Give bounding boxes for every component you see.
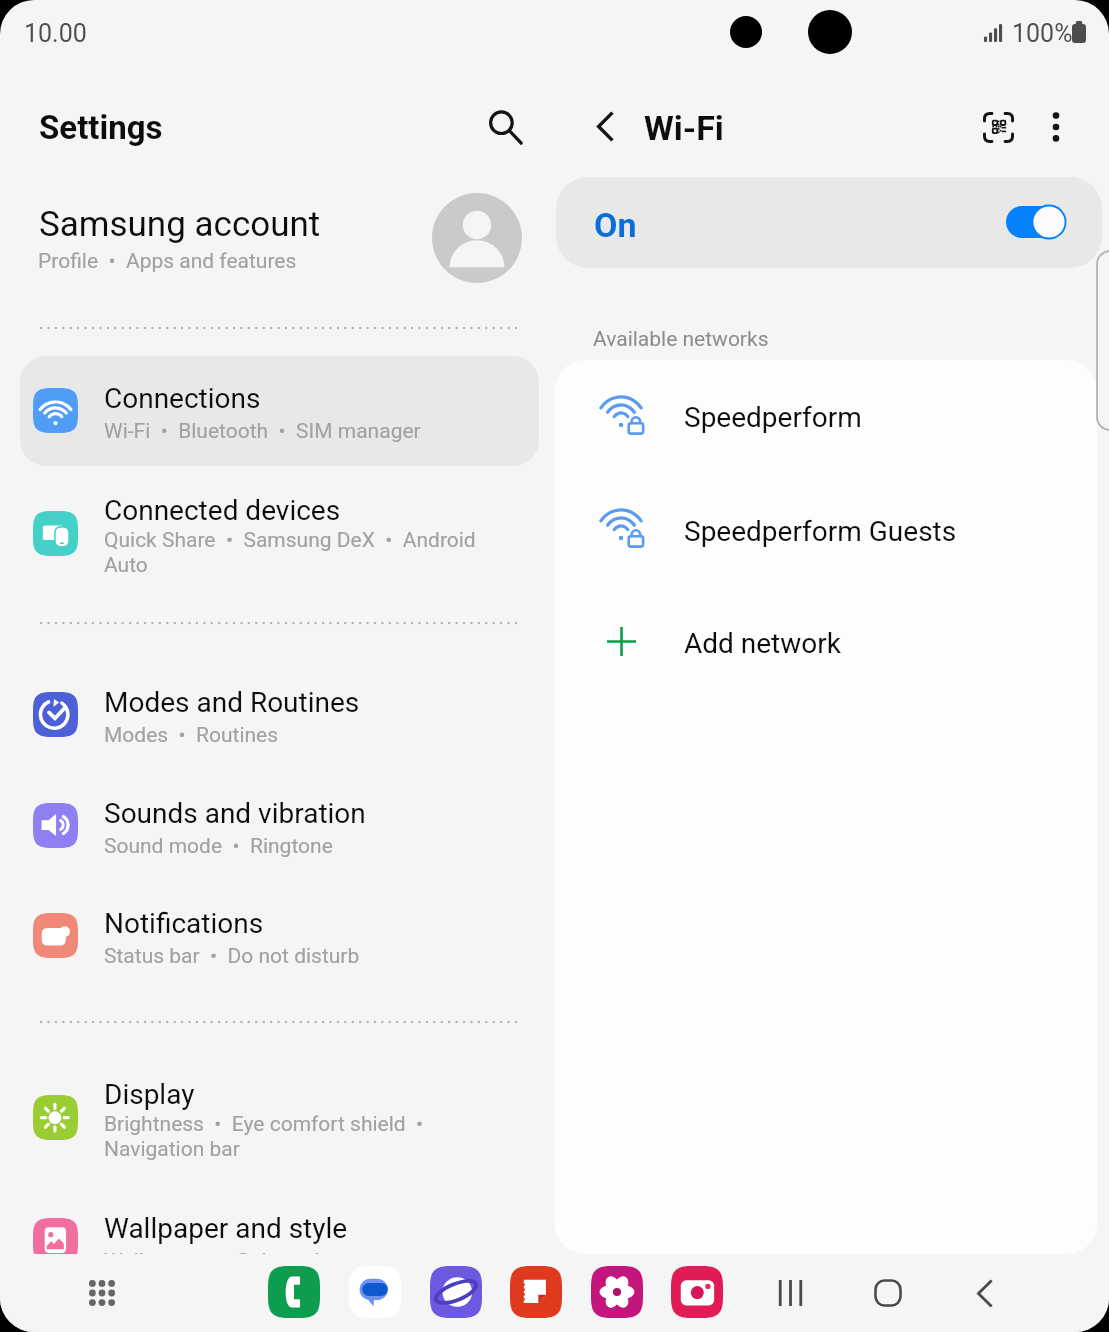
staticText: 10.00 [24, 19, 87, 48]
button[interactable] [555, 586, 1097, 699]
button[interactable] [20, 660, 539, 770]
button[interactable]: Gallery [591, 1266, 643, 1318]
staticText: Wi-Fi [644, 108, 724, 148]
staticText: Speedperform Guests [684, 515, 957, 548]
button[interactable]: Search [477, 99, 533, 155]
button[interactable]: Messages [349, 1266, 401, 1318]
button[interactable]: Internet [430, 1266, 482, 1318]
button[interactable] [20, 1186, 539, 1296]
button[interactable]: Home [863, 1268, 913, 1318]
staticText: Modes • Routines [104, 723, 279, 748]
staticText: Modes and Routines [104, 686, 360, 719]
button[interactable] [20, 881, 539, 991]
staticText: Display [104, 1078, 195, 1111]
staticText: Connected devices [104, 494, 341, 527]
staticText: Wi-Fi • Bluetooth • SIM manager [104, 419, 421, 444]
staticText: Sound mode • Ringtone [104, 834, 333, 859]
staticText: Sounds and vibration [104, 797, 366, 830]
staticText: Status bar • Do not disturb [104, 944, 360, 969]
button[interactable] [20, 356, 539, 466]
staticText: Settings [39, 108, 163, 147]
button[interactable]: Back [960, 1268, 1010, 1318]
button[interactable] [555, 473, 1097, 586]
button[interactable] [555, 360, 1097, 473]
staticText: Wallpaper and style [104, 1212, 348, 1245]
button[interactable]: Back [577, 98, 633, 154]
staticText: 100% [1012, 19, 1073, 48]
staticText: Profile • Apps and features [38, 249, 297, 274]
staticText: Auto [104, 553, 148, 578]
staticText: Notifications [104, 907, 264, 940]
button[interactable]: Samsung Notes [510, 1266, 562, 1318]
staticText: Connections [104, 382, 261, 415]
staticText: Quick Share • Samsung DeX • Android [104, 528, 476, 553]
staticText: On [594, 205, 637, 245]
button[interactable]: More options [1028, 99, 1084, 155]
button[interactable]: Scan QR code [970, 99, 1026, 155]
button[interactable]: Apps [77, 1268, 127, 1318]
button[interactable] [20, 1063, 539, 1173]
staticText: Brightness • Eye comfort shield • [104, 1112, 424, 1137]
button[interactable]: Phone [268, 1266, 320, 1318]
button[interactable] [20, 479, 539, 589]
button[interactable]: Camera [671, 1266, 723, 1318]
button[interactable] [556, 177, 1102, 268]
staticText: Speedperform [684, 401, 862, 434]
button[interactable] [20, 771, 539, 881]
staticText: Navigation bar [104, 1137, 240, 1162]
staticText: Wallpapers • Color palette [104, 1249, 356, 1274]
staticText: Available networks [593, 327, 769, 352]
staticText: Samsung account [39, 204, 321, 245]
staticText: Add network [684, 627, 841, 660]
button[interactable] [0, 190, 555, 286]
button[interactable]: Recents [765, 1268, 815, 1318]
